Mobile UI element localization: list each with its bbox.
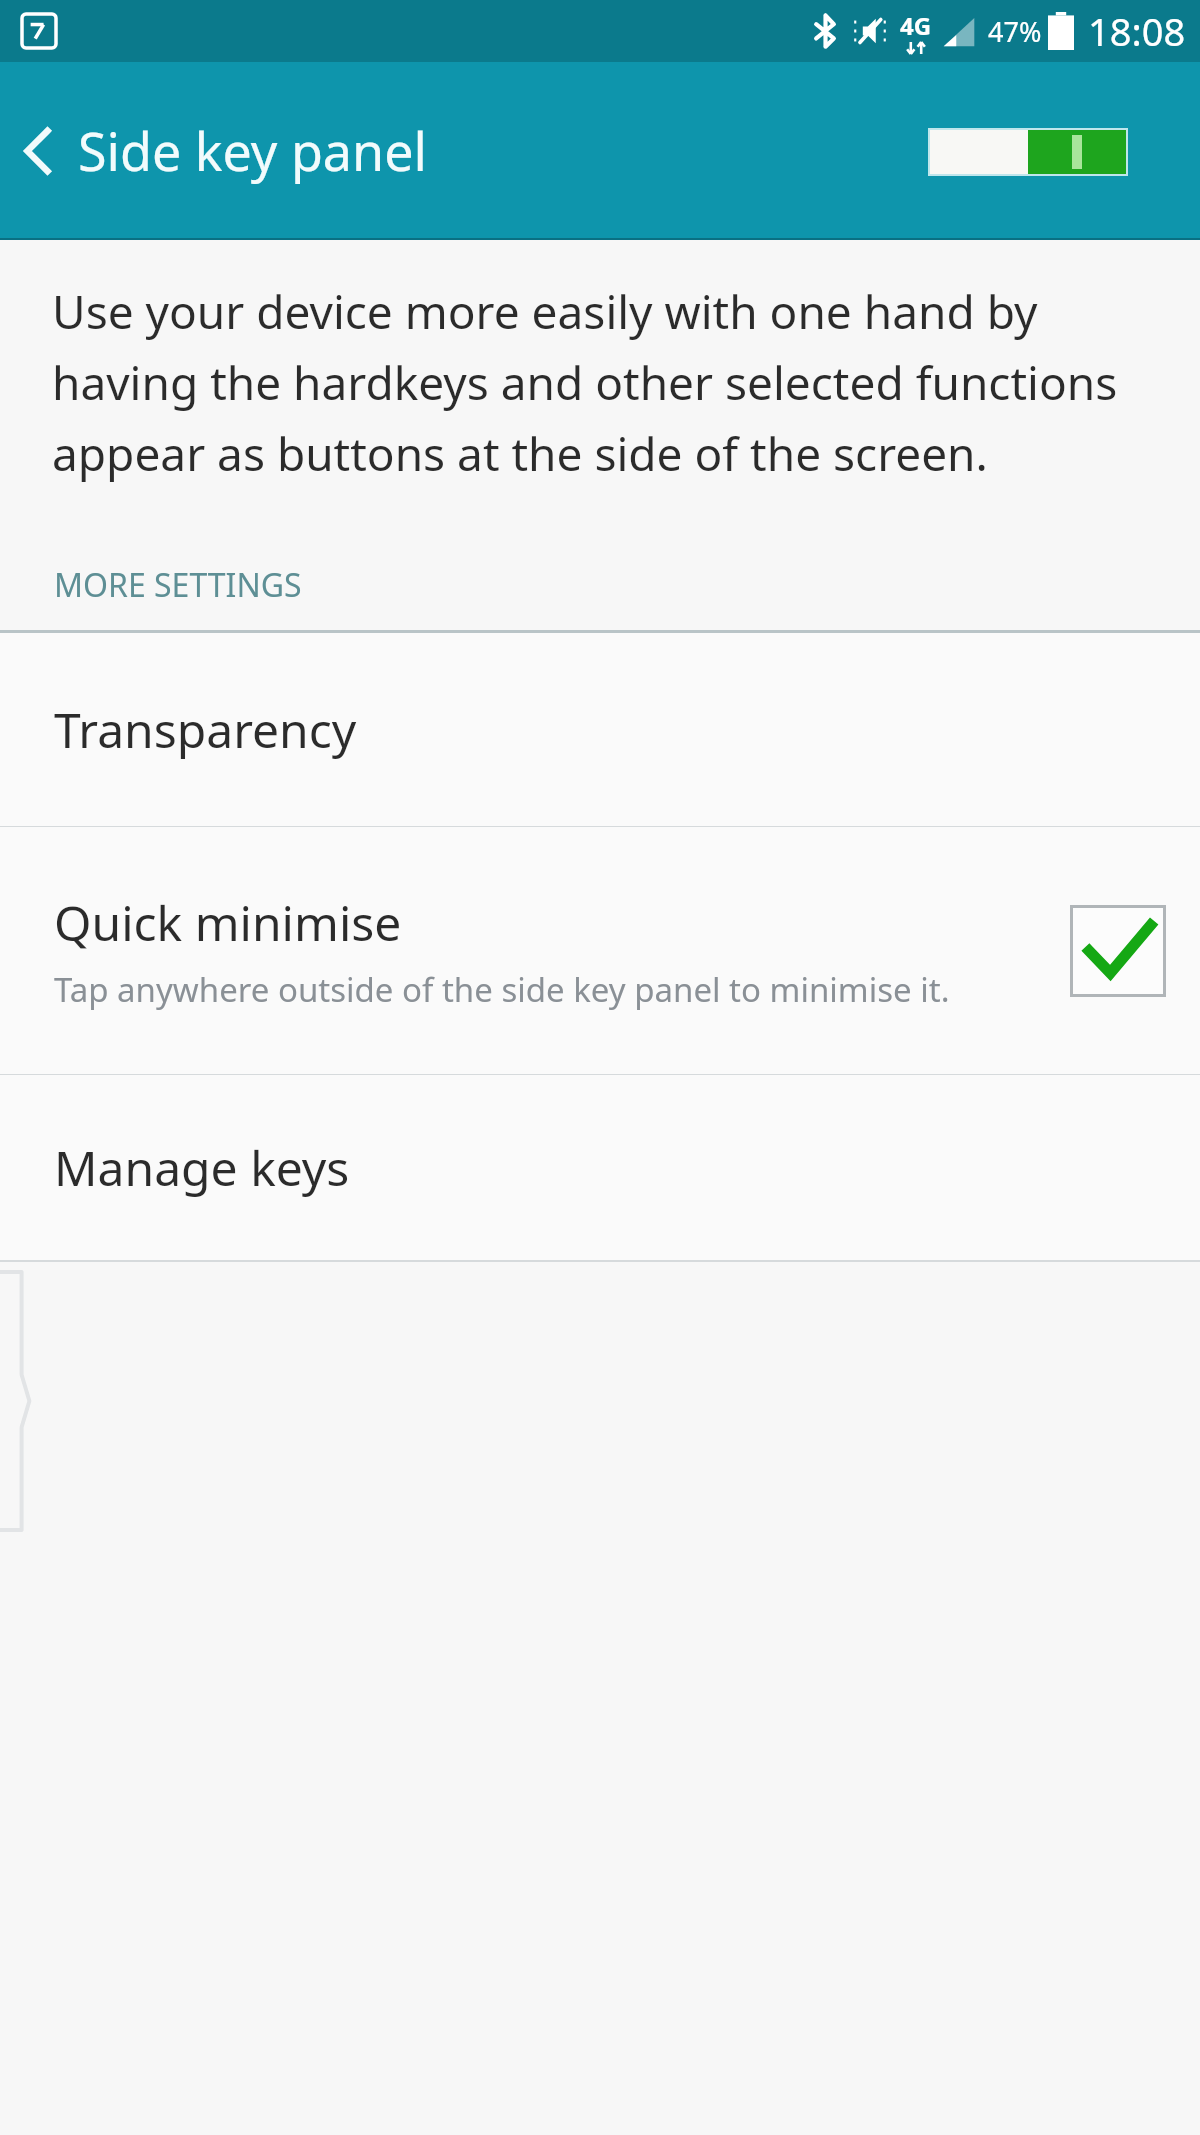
button[interactable]: Manage keys xyxy=(0,1075,1200,1260)
button[interactable]: Side key panel on/off xyxy=(928,128,1128,176)
staticText: 47% xyxy=(988,13,1042,50)
staticText: Tap anywhere outside of the side key pan… xyxy=(54,967,950,1012)
staticText: 18:08 xyxy=(1088,5,1186,57)
staticText: Manage keys xyxy=(54,1135,350,1200)
staticText: MORE SETTINGS xyxy=(54,563,302,607)
staticText: 4G xyxy=(900,9,932,42)
staticText: Quick minimise xyxy=(54,890,402,955)
button[interactable]: Quick minimise xyxy=(0,827,1200,1074)
other: Back xyxy=(22,127,52,175)
button[interactable]: Transparency xyxy=(0,633,1200,826)
staticText: Side key panel xyxy=(78,115,427,186)
staticText: Transparency xyxy=(54,697,357,762)
button[interactable]: Quick minimise checkbox xyxy=(1070,905,1166,997)
button[interactable]: Back xyxy=(0,101,451,200)
staticText: Use your device more easily with one han… xyxy=(52,280,1142,484)
